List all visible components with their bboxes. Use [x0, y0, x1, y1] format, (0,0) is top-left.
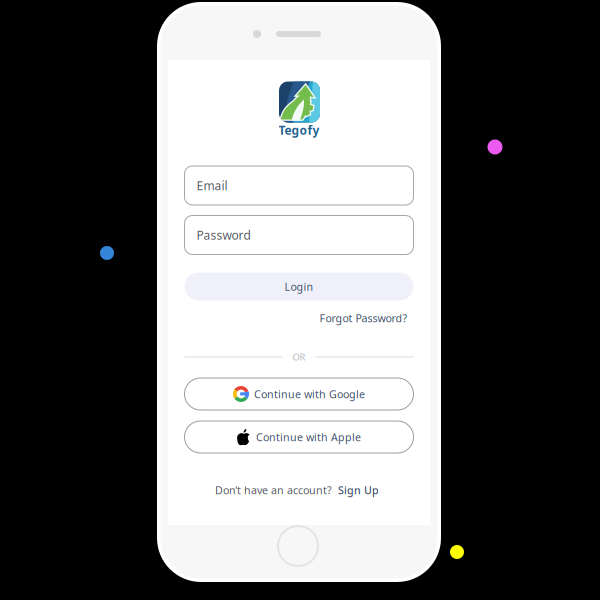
staticText: Login [284, 279, 313, 294]
staticText: Sign Up [338, 483, 379, 497]
staticText: OR [292, 351, 305, 363]
button[interactable]: Continue with Apple [184, 421, 413, 453]
staticText: Tegofy [278, 122, 319, 138]
staticText: Continue with Google [254, 387, 365, 401]
staticText: Don't have an account? [215, 483, 332, 497]
button[interactable]: Continue with Google [184, 378, 413, 410]
button[interactable]: Forgot Password? [184, 310, 413, 326]
staticText: Forgot Password? [319, 311, 407, 325]
staticText: Password [196, 227, 250, 243]
button[interactable]: Sign Up [338, 483, 379, 497]
staticText: Email [196, 177, 227, 193]
button[interactable]: Login [184, 272, 413, 300]
staticText: Continue with Apple [256, 430, 361, 444]
